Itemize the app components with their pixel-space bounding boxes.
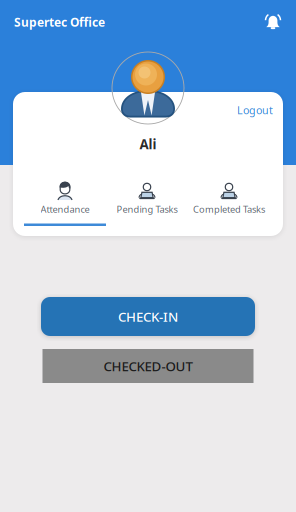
staticText: Supertec Office bbox=[14, 14, 105, 30]
button[interactable]: Logout bbox=[232, 100, 278, 120]
staticText: Logout bbox=[237, 103, 273, 117]
button[interactable]: CHECKED-OUT bbox=[42, 349, 253, 383]
staticText: CHECKED-OUT bbox=[103, 357, 192, 375]
button[interactable]: CHECK-IN bbox=[41, 297, 255, 336]
button[interactable]: Completed Tasks bbox=[188, 180, 270, 236]
staticText: Completed Tasks bbox=[193, 203, 265, 215]
staticText: Attendance bbox=[40, 203, 89, 215]
staticText: Ali bbox=[139, 135, 156, 153]
button[interactable]: Notifications bbox=[265, 9, 281, 30]
button[interactable]: Attendance bbox=[24, 180, 106, 236]
staticText: Pending Tasks bbox=[116, 203, 177, 215]
staticText: CHECK-IN bbox=[118, 308, 178, 325]
button[interactable]: Pending Tasks bbox=[106, 180, 188, 236]
